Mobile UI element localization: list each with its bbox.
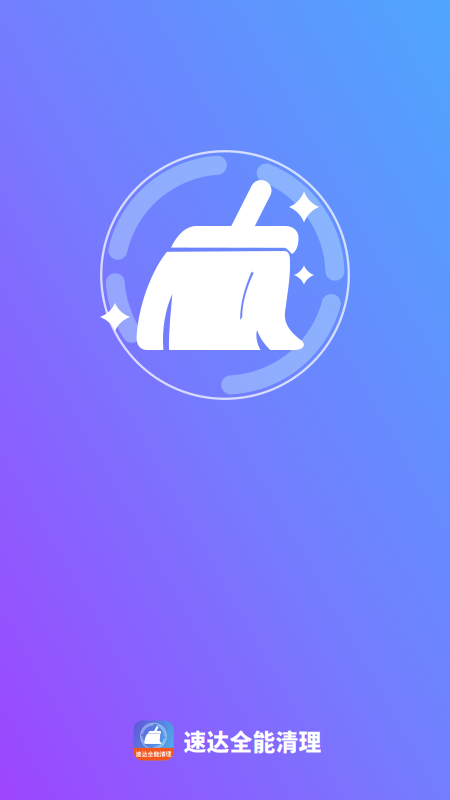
staticText: 速达全能清理 <box>183 724 321 757</box>
staticText: 速达全能清理 <box>136 750 172 758</box>
